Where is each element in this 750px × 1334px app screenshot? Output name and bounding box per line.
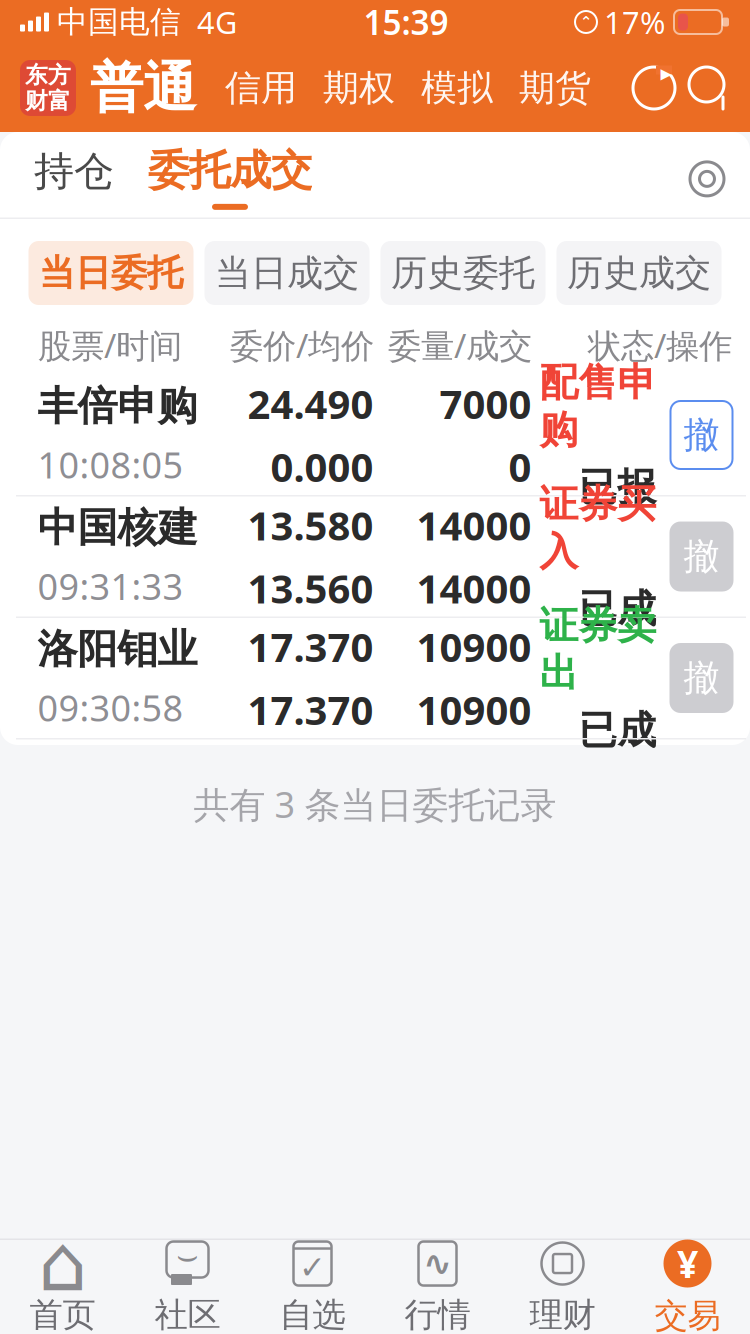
staticText: 历史委托 <box>391 251 535 295</box>
staticText: 13.580 <box>247 498 373 551</box>
button[interactable]: Refresh <box>628 62 680 114</box>
button[interactable]: 撤 <box>670 522 732 590</box>
button[interactable]: Search <box>684 62 736 114</box>
staticText: 期权 <box>323 66 395 110</box>
button[interactable]: 期权 <box>310 60 408 116</box>
staticText: 14000 <box>416 498 531 551</box>
staticText: ∿ <box>423 1244 452 1283</box>
staticText: ⌣ <box>176 1240 199 1273</box>
button[interactable]: 撤 <box>670 644 732 712</box>
staticText: 丰倍申购 <box>37 381 197 431</box>
button[interactable]: 期货 <box>506 60 604 116</box>
staticText: 期货 <box>519 66 591 110</box>
staticText: 首页 <box>29 1294 95 1334</box>
button[interactable]: ⌣ <box>125 1240 250 1334</box>
staticText: ¥ <box>677 1239 698 1288</box>
button[interactable]: ✓ <box>250 1240 375 1334</box>
staticText: 模拟 <box>421 66 493 110</box>
button[interactable]: 中国核建 <box>0 496 750 616</box>
staticText: 已成 <box>578 585 656 633</box>
button[interactable]: ⌂ <box>0 1240 125 1334</box>
staticText: 股票/时间 <box>38 323 182 367</box>
staticText: 当日委托 <box>39 251 183 295</box>
staticText: 撤 <box>683 534 719 579</box>
staticText: 配售申购 <box>539 359 656 454</box>
staticText: 历史成交 <box>567 251 711 295</box>
staticText: 证券买入 <box>539 480 656 575</box>
button[interactable]: 历史委托 <box>380 241 545 305</box>
button[interactable]: 理财 <box>500 1240 625 1334</box>
staticText: 4G <box>197 2 237 42</box>
staticText: 理财 <box>529 1294 595 1334</box>
staticText: 持仓 <box>34 147 114 196</box>
staticText: 撤 <box>683 413 719 457</box>
staticText: 17% <box>604 2 665 42</box>
staticText: 状态/操作 <box>588 323 732 367</box>
staticText: 洛阳钼业 <box>37 624 197 674</box>
staticText: 中国核建 <box>37 503 197 552</box>
button[interactable]: Settings <box>684 156 730 202</box>
button[interactable]: 模拟 <box>408 60 506 116</box>
staticText: 09:30:58 <box>37 684 183 731</box>
staticText: 10900 <box>416 620 531 673</box>
staticText: 0.000 <box>270 440 373 493</box>
staticText: 委量/成交 <box>388 323 532 367</box>
staticText: ▸ <box>660 60 671 86</box>
staticText: 当日成交 <box>215 251 359 295</box>
staticText: 10:08:05 <box>37 441 183 488</box>
staticText: ⌃ <box>580 14 592 30</box>
button[interactable]: 委托成交 <box>142 145 318 210</box>
staticText: 行情 <box>404 1294 470 1334</box>
staticText: 委托成交 <box>148 145 312 196</box>
staticText: 交易 <box>654 1295 720 1334</box>
staticText: 东方 <box>25 61 71 89</box>
staticText: 24.490 <box>247 377 373 430</box>
staticText: 共有 3 条当日委托记录 <box>193 780 556 828</box>
button[interactable]: 当日委托 <box>28 241 193 305</box>
staticText: 13.560 <box>247 561 373 615</box>
staticText: 7000 <box>439 377 531 430</box>
button[interactable]: 历史成交 <box>556 241 721 305</box>
staticText: 委价/均价 <box>230 323 374 367</box>
staticText: 撤 <box>683 656 719 700</box>
staticText: 10900 <box>416 683 531 736</box>
button[interactable]: ∿ <box>375 1240 500 1334</box>
staticText: 证券卖出 <box>539 602 656 697</box>
staticText: 普通 <box>90 55 196 121</box>
staticText: ⌂ <box>38 1220 87 1307</box>
staticText: ✓ <box>299 1249 326 1286</box>
staticText: 中国电信 <box>57 3 181 41</box>
staticText: 财富 <box>25 87 71 115</box>
button[interactable]: 持仓 <box>28 147 120 210</box>
staticText: 已报 <box>578 464 656 511</box>
staticText: 15:39 <box>363 0 448 44</box>
staticText: 自选 <box>279 1294 345 1334</box>
staticText: 0 <box>508 440 531 493</box>
button[interactable]: 洛阳钼业 <box>0 618 750 738</box>
button[interactable]: 当日成交 <box>204 241 369 305</box>
staticText: 17.370 <box>247 620 373 673</box>
button[interactable]: 丰倍申购 <box>0 375 750 495</box>
staticText: 社区 <box>154 1294 220 1334</box>
button[interactable]: 东方 <box>20 55 196 121</box>
staticText: 17.370 <box>247 683 373 736</box>
staticText: 已成 <box>578 707 656 754</box>
button[interactable]: ¥ <box>625 1240 750 1334</box>
staticText: 信用 <box>225 66 297 110</box>
button[interactable]: 撤 <box>670 401 732 469</box>
staticText: 09:31:33 <box>37 562 183 610</box>
staticText: 14000 <box>416 561 531 615</box>
button[interactable]: 信用 <box>212 60 310 116</box>
